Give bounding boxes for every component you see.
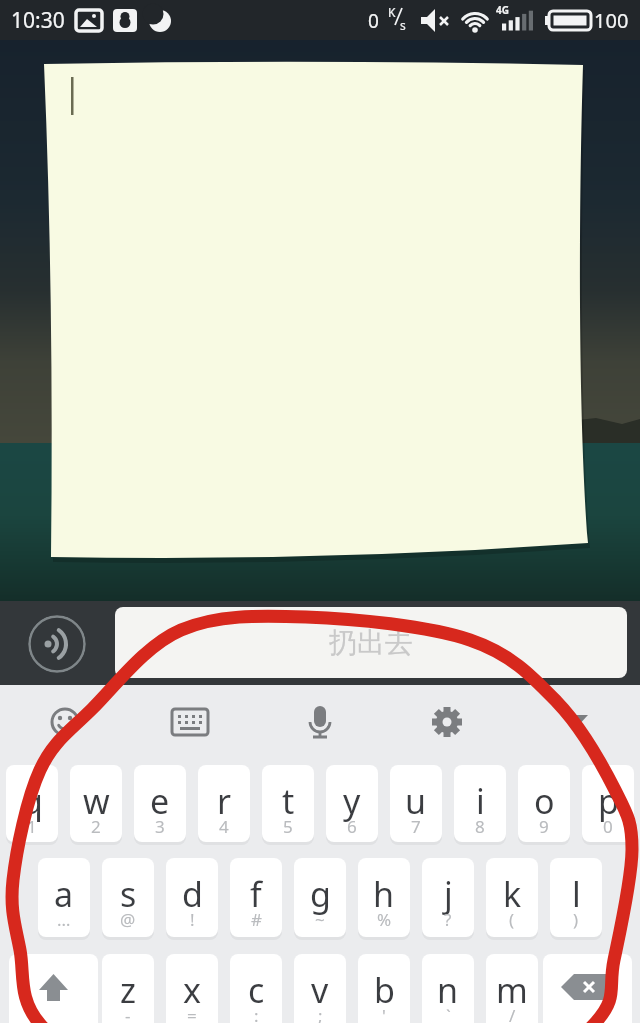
button[interactable]: k	[486, 858, 538, 937]
staticText: p	[598, 778, 619, 824]
button[interactable]	[9, 954, 98, 1023]
staticText: @	[120, 908, 136, 931]
staticText: 8	[475, 815, 485, 838]
staticText: 4G	[496, 3, 509, 17]
button[interactable]	[292, 694, 348, 750]
button[interactable]: s	[102, 858, 154, 937]
button[interactable]: v	[294, 954, 346, 1023]
staticText: s	[400, 17, 406, 33]
button[interactable]: e	[134, 765, 186, 842]
button[interactable]: w	[70, 765, 122, 842]
staticText: q	[22, 778, 43, 824]
staticText: #	[251, 908, 262, 931]
staticText: 3	[155, 815, 165, 838]
staticText: %	[377, 908, 392, 931]
staticText: 100	[594, 7, 629, 34]
staticText: 6	[347, 815, 357, 838]
staticText: k	[503, 871, 522, 917]
staticText: z	[120, 967, 136, 1013]
staticText: 0	[368, 8, 379, 34]
staticText: '	[382, 1004, 386, 1023]
staticText: i	[476, 778, 485, 824]
staticText: `	[446, 1004, 451, 1023]
staticText: ;	[318, 1004, 323, 1023]
staticText: 9	[539, 815, 549, 838]
button[interactable]: z	[102, 954, 154, 1023]
staticText: f	[250, 871, 262, 917]
button[interactable]: y	[326, 765, 378, 842]
button[interactable]: f	[230, 858, 282, 937]
staticText: a	[54, 871, 74, 917]
staticText: 10:30	[11, 6, 65, 35]
button[interactable]: g	[294, 858, 346, 937]
button[interactable]	[162, 694, 218, 750]
staticText: K	[388, 4, 396, 20]
button[interactable]	[543, 954, 632, 1023]
button[interactable]: x	[166, 954, 218, 1023]
staticText: g	[310, 871, 331, 917]
staticText: u	[405, 778, 427, 824]
staticText: y	[343, 778, 361, 824]
button[interactable]	[419, 694, 475, 750]
button[interactable]: p	[582, 765, 634, 842]
button[interactable]: n	[422, 954, 474, 1023]
staticText: 1	[27, 815, 37, 838]
staticText: ?	[444, 908, 452, 931]
staticText: 4	[219, 815, 229, 838]
button[interactable]: t	[262, 765, 314, 842]
staticText: d	[182, 871, 203, 917]
button[interactable]	[28, 615, 86, 673]
staticText: =	[187, 1004, 197, 1023]
staticText: c	[248, 967, 265, 1013]
staticText: v	[311, 967, 329, 1013]
button[interactable]: h	[358, 858, 410, 937]
staticText: w	[83, 778, 110, 824]
staticText: 0	[603, 815, 613, 838]
button[interactable]: o	[518, 765, 570, 842]
button[interactable]: l	[550, 858, 602, 937]
staticText: t	[282, 778, 295, 824]
button[interactable]: d	[166, 858, 218, 937]
staticText: s	[120, 871, 137, 917]
staticText: -	[125, 1004, 131, 1023]
staticText: b	[374, 967, 395, 1013]
button[interactable]: 扔出去	[115, 607, 627, 678]
staticText: j	[444, 871, 453, 917]
button[interactable]: j	[422, 858, 474, 937]
staticText: o	[534, 778, 555, 824]
staticText: !	[190, 908, 195, 931]
staticText: :	[254, 1004, 259, 1023]
staticText: 7	[411, 815, 421, 838]
button[interactable]	[37, 694, 93, 750]
button[interactable]: c	[230, 954, 282, 1023]
button[interactable]: q	[6, 765, 58, 842]
button[interactable]: r	[198, 765, 250, 842]
button[interactable]: u	[390, 765, 442, 842]
staticText: 5	[283, 815, 293, 838]
staticText: ~	[315, 908, 325, 931]
button[interactable]: b	[358, 954, 410, 1023]
button[interactable]	[547, 694, 603, 750]
staticText: e	[150, 778, 170, 824]
button[interactable]: i	[454, 765, 506, 842]
staticText: n	[437, 967, 459, 1013]
staticText: m	[496, 967, 528, 1013]
staticText: 2	[91, 815, 101, 838]
button[interactable]: a	[38, 858, 90, 937]
staticText: )	[573, 908, 579, 931]
staticText: l	[572, 871, 581, 917]
staticText: /	[509, 1004, 516, 1023]
staticText: (	[509, 908, 515, 931]
staticText: …	[57, 908, 71, 931]
staticText: h	[373, 871, 395, 917]
staticText: r	[217, 778, 232, 824]
button[interactable]: m	[486, 954, 538, 1023]
staticText: 扔出去	[329, 625, 413, 660]
staticText: x	[183, 967, 201, 1013]
